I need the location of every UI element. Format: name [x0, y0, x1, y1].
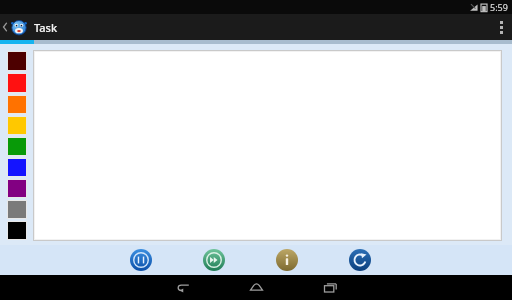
- button[interactable]: Fast forward: [201, 247, 227, 273]
- button[interactable]: Task: [0, 18, 64, 36]
- button[interactable]: Pause: [128, 247, 154, 273]
- button[interactable]: Information: [274, 247, 300, 273]
- button[interactable]: Recents: [317, 275, 343, 300]
- staticText: 5:59: [490, 1, 508, 13]
- button[interactable]: Home: [243, 275, 269, 300]
- button[interactable]: Back: [169, 275, 195, 300]
- staticText: Task: [34, 20, 58, 35]
- button[interactable]: Reset: [347, 247, 373, 273]
- button[interactable]: More options: [490, 14, 512, 40]
